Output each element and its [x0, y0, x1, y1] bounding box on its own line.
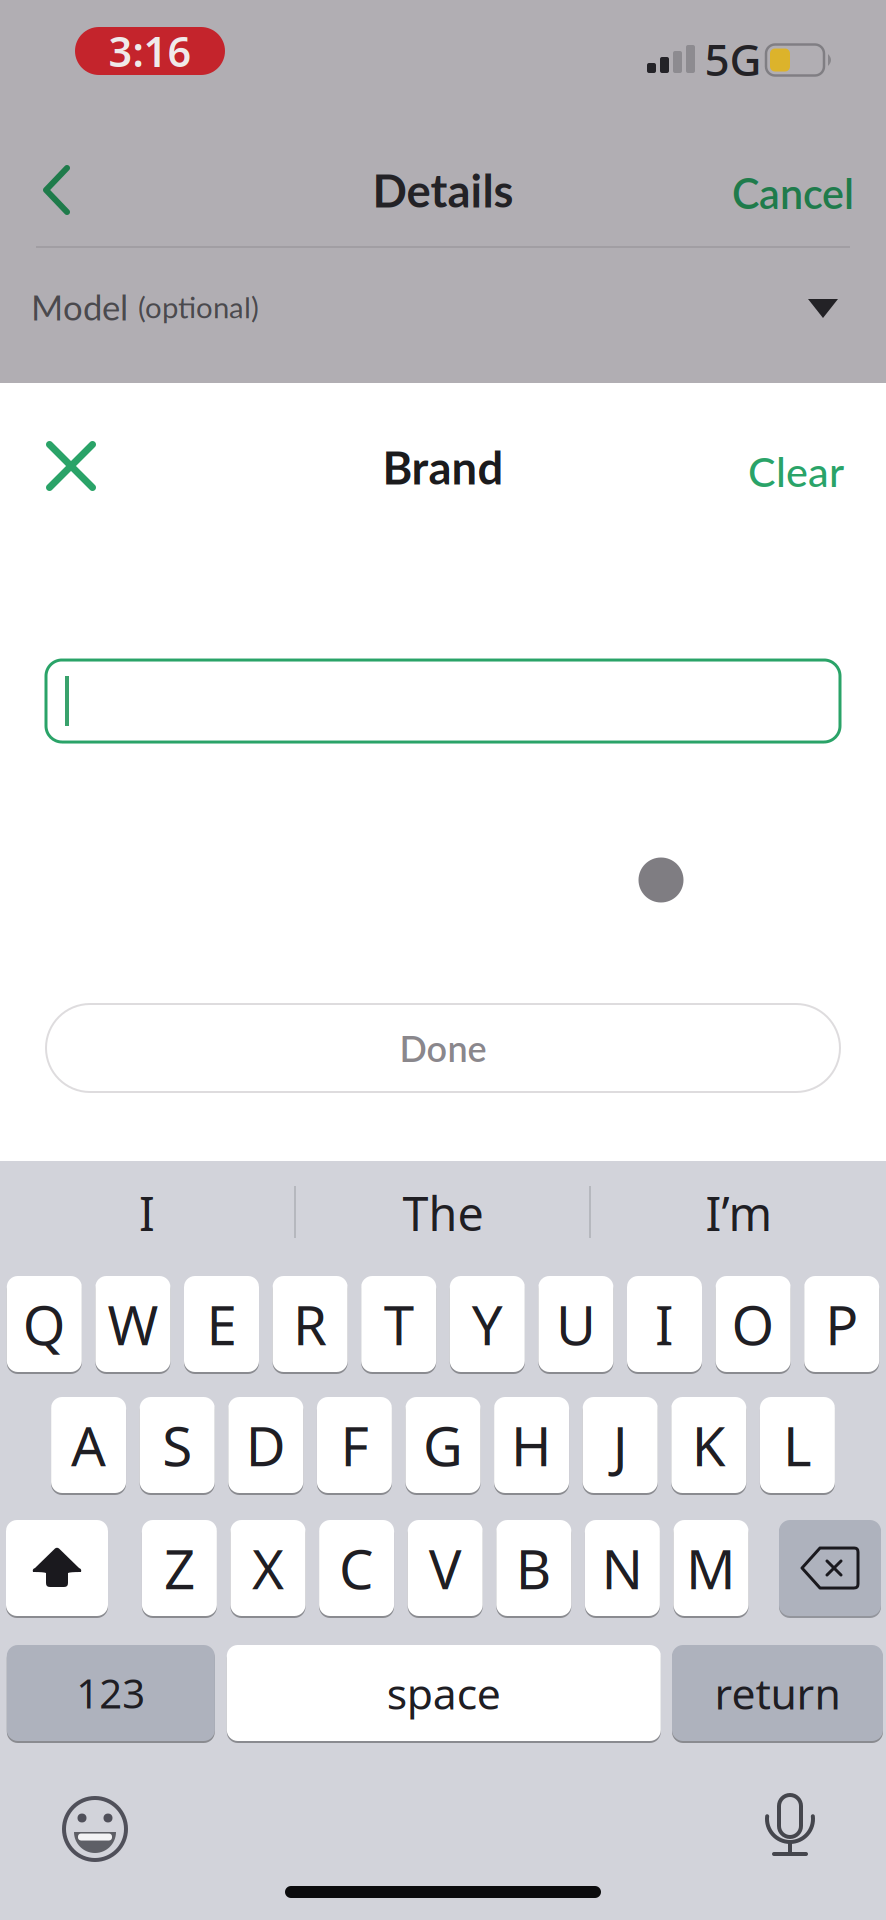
button[interactable]: Done	[46, 1004, 840, 1092]
staticText: Model	[31, 286, 128, 328]
staticText: D	[246, 1409, 286, 1481]
staticText: S	[162, 1409, 192, 1481]
button[interactable]: N	[585, 1520, 660, 1616]
button[interactable]: The	[303, 1168, 583, 1258]
staticText: O	[732, 1288, 775, 1360]
staticText: Brand	[382, 440, 503, 494]
button[interactable]: O	[716, 1276, 791, 1372]
staticText: B	[516, 1532, 552, 1604]
staticText: I	[139, 1182, 155, 1244]
staticText: J	[613, 1409, 628, 1481]
button[interactable]: Y	[450, 1276, 525, 1372]
staticText: N	[601, 1532, 643, 1604]
button[interactable]: Emoji	[52, 1786, 138, 1872]
button[interactable]: S	[140, 1397, 215, 1493]
button[interactable]: M	[673, 1520, 748, 1616]
staticText: I	[655, 1288, 674, 1360]
staticText: 3:16	[108, 24, 191, 78]
button[interactable]: I	[627, 1276, 702, 1372]
staticText: Done	[399, 1026, 486, 1070]
button[interactable]: Back	[31, 154, 83, 226]
button[interactable]: U	[538, 1276, 613, 1372]
staticText: A	[71, 1409, 106, 1481]
staticText: I’m	[705, 1182, 772, 1244]
button[interactable]: E	[184, 1276, 259, 1372]
staticText: 5G	[704, 30, 761, 88]
staticText: space	[387, 1665, 501, 1721]
button[interactable]: space	[227, 1645, 661, 1741]
button[interactable]: R	[273, 1276, 348, 1372]
staticText: Y	[472, 1288, 503, 1360]
staticText: Details	[372, 163, 513, 217]
button[interactable]: Clear	[740, 438, 852, 504]
staticText: F	[340, 1409, 368, 1481]
staticText: G	[423, 1409, 463, 1481]
button[interactable]: L	[760, 1397, 835, 1493]
button[interactable]: Delete	[779, 1520, 881, 1616]
button[interactable]: Shift	[6, 1520, 108, 1616]
button[interactable]: B	[496, 1520, 571, 1616]
button[interactable]: W	[95, 1276, 170, 1372]
staticText: 123	[76, 1666, 145, 1719]
staticText: M	[686, 1532, 736, 1604]
staticText: V	[429, 1532, 462, 1604]
button[interactable]: G	[405, 1397, 480, 1493]
button[interactable]: I’m	[599, 1168, 879, 1258]
staticText: Z	[164, 1532, 195, 1604]
staticText: C	[339, 1532, 374, 1604]
staticText: Clear	[748, 446, 844, 496]
staticText: T	[384, 1288, 414, 1360]
button[interactable]: X	[230, 1520, 305, 1616]
button[interactable]: F	[317, 1397, 392, 1493]
staticText: (optional)	[138, 289, 259, 325]
button[interactable]: T	[361, 1276, 436, 1372]
button[interactable]: K	[671, 1397, 746, 1493]
staticText: E	[206, 1288, 236, 1360]
staticText: W	[107, 1288, 158, 1360]
staticText: Q	[23, 1288, 66, 1360]
button[interactable]: 123	[7, 1645, 215, 1741]
button[interactable]: V	[408, 1520, 483, 1616]
staticText: return	[714, 1665, 840, 1721]
button[interactable]: H	[494, 1397, 569, 1493]
button[interactable]: D	[228, 1397, 303, 1493]
button[interactable]: I	[7, 1168, 287, 1258]
button[interactable]: Stop screen recording	[75, 24, 225, 78]
button[interactable]: P	[804, 1276, 879, 1372]
button[interactable]: J	[583, 1397, 658, 1493]
button[interactable]: A	[51, 1397, 126, 1493]
button[interactable]: return	[672, 1645, 883, 1741]
staticText: P	[825, 1288, 858, 1360]
staticText: K	[692, 1409, 726, 1481]
button[interactable]: Dictate	[750, 1782, 830, 1870]
button[interactable]: Q	[7, 1276, 82, 1372]
staticText: L	[783, 1409, 812, 1481]
button[interactable]: Close	[35, 430, 106, 501]
staticText: The	[402, 1182, 483, 1244]
button[interactable]: Model (optional)	[0, 255, 886, 363]
button[interactable]: Z	[142, 1520, 217, 1616]
button[interactable]: Cancel	[724, 160, 862, 226]
staticText: H	[511, 1409, 552, 1481]
staticText: R	[293, 1288, 327, 1360]
staticText: U	[556, 1288, 596, 1360]
button[interactable]: C	[319, 1520, 394, 1616]
staticText: Cancel	[732, 168, 854, 218]
staticText: X	[252, 1532, 284, 1604]
